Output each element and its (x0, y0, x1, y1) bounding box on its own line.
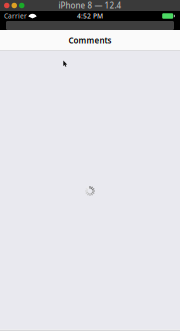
staticText: 4:52 PM (77, 12, 103, 20)
staticText: Comments (68, 35, 111, 46)
staticText: iPhone 8 — 12.4 (58, 0, 121, 11)
staticText: Carrier (4, 12, 27, 20)
